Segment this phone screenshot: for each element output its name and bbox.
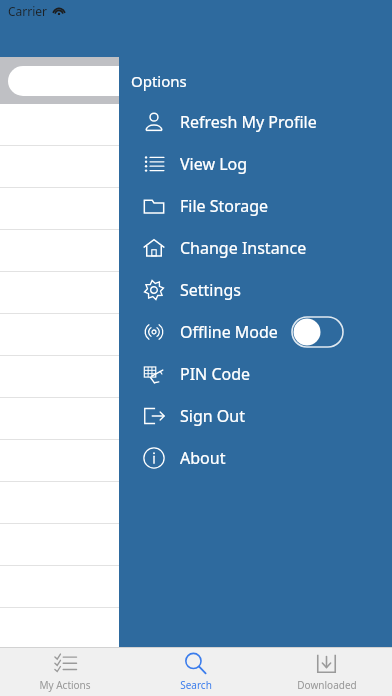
- button[interactable]: Refresh My Profile: [119, 101, 392, 143]
- button[interactable]: [0, 146, 392, 188]
- staticText: Sign Out: [180, 405, 245, 427]
- button[interactable]: [0, 482, 392, 524]
- button[interactable]: Offline Mode: [119, 311, 392, 353]
- button[interactable]: Downloaded: [261, 648, 392, 696]
- button[interactable]: Change Instance: [119, 227, 392, 269]
- staticText: View Log: [180, 153, 248, 175]
- button[interactable]: [0, 524, 392, 566]
- staticText: Search: [180, 678, 212, 692]
- staticText: About: [180, 447, 226, 469]
- staticText: Refresh My Profile: [180, 111, 317, 133]
- button[interactable]: [0, 272, 392, 314]
- staticText: Downloaded: [297, 678, 357, 692]
- button[interactable]: [0, 440, 392, 482]
- staticText: Change Instance: [180, 237, 307, 259]
- staticText: Options: [131, 71, 187, 91]
- button[interactable]: Sign Out: [119, 395, 392, 437]
- button[interactable]: [0, 650, 392, 692]
- button[interactable]: [0, 608, 392, 650]
- staticText: PIN Code: [180, 363, 251, 385]
- staticText: Carrier: [8, 3, 48, 19]
- button[interactable]: [0, 356, 392, 398]
- button[interactable]: [0, 398, 392, 440]
- button[interactable]: [0, 314, 392, 356]
- button[interactable]: My Actions: [0, 648, 130, 696]
- staticText: Settings: [180, 279, 241, 301]
- button[interactable]: [0, 566, 392, 608]
- button[interactable]: View Log: [119, 143, 392, 185]
- button[interactable]: [292, 317, 343, 347]
- button[interactable]: About: [119, 437, 392, 479]
- button[interactable]: [0, 104, 392, 146]
- button[interactable]: Search: [130, 648, 261, 696]
- button[interactable]: [0, 230, 392, 272]
- staticText: Offline Mode: [180, 321, 278, 343]
- button[interactable]: Settings: [119, 269, 392, 311]
- button[interactable]: [0, 188, 392, 230]
- staticText: My Actions: [39, 678, 91, 692]
- button[interactable]: File Storage: [119, 185, 392, 227]
- button[interactable]: [8, 66, 384, 96]
- staticText: File Storage: [180, 195, 269, 217]
- button[interactable]: PIN Code: [119, 353, 392, 395]
